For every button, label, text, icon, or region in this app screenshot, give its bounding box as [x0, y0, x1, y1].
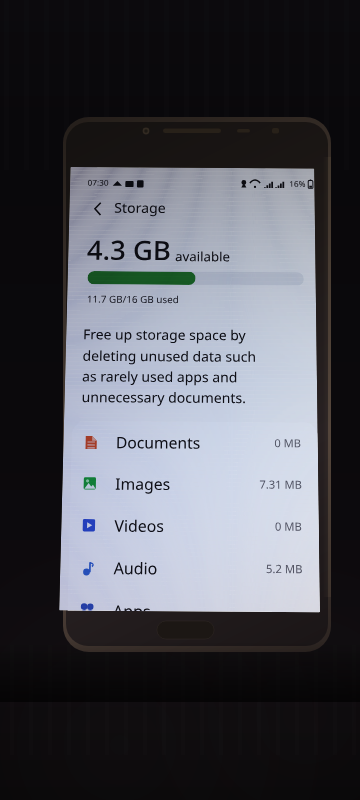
staticText: 07:30	[87, 177, 109, 188]
button[interactable]: Videos	[69, 504, 319, 547]
staticText: Apps	[113, 599, 151, 611]
button[interactable]: Back	[87, 197, 109, 217]
button[interactable]: Audio	[68, 546, 320, 590]
button[interactable]: Apps	[67, 588, 320, 612]
staticText: 4.3 GB	[87, 231, 171, 268]
staticText: 0 MB	[274, 435, 302, 450]
staticText: Storage	[114, 198, 166, 217]
staticText: Free up storage space by deleting unused…	[81, 325, 257, 407]
staticText: 5.2 MB	[266, 560, 303, 576]
staticText: 0 MB	[275, 518, 303, 534]
staticText: available	[175, 248, 230, 265]
staticText: Videos	[114, 514, 165, 536]
staticText: 11.7 GB/16 GB used	[87, 292, 180, 306]
button[interactable]: Documents	[71, 421, 318, 463]
staticText: 16%	[289, 178, 306, 190]
staticText: Audio	[113, 556, 158, 579]
staticText: Documents	[116, 431, 201, 453]
staticText: Images	[115, 472, 171, 494]
staticText: 7.31 MB	[259, 476, 302, 492]
button[interactable]: Images	[70, 462, 319, 505]
button[interactable]: Back	[77, 193, 315, 222]
